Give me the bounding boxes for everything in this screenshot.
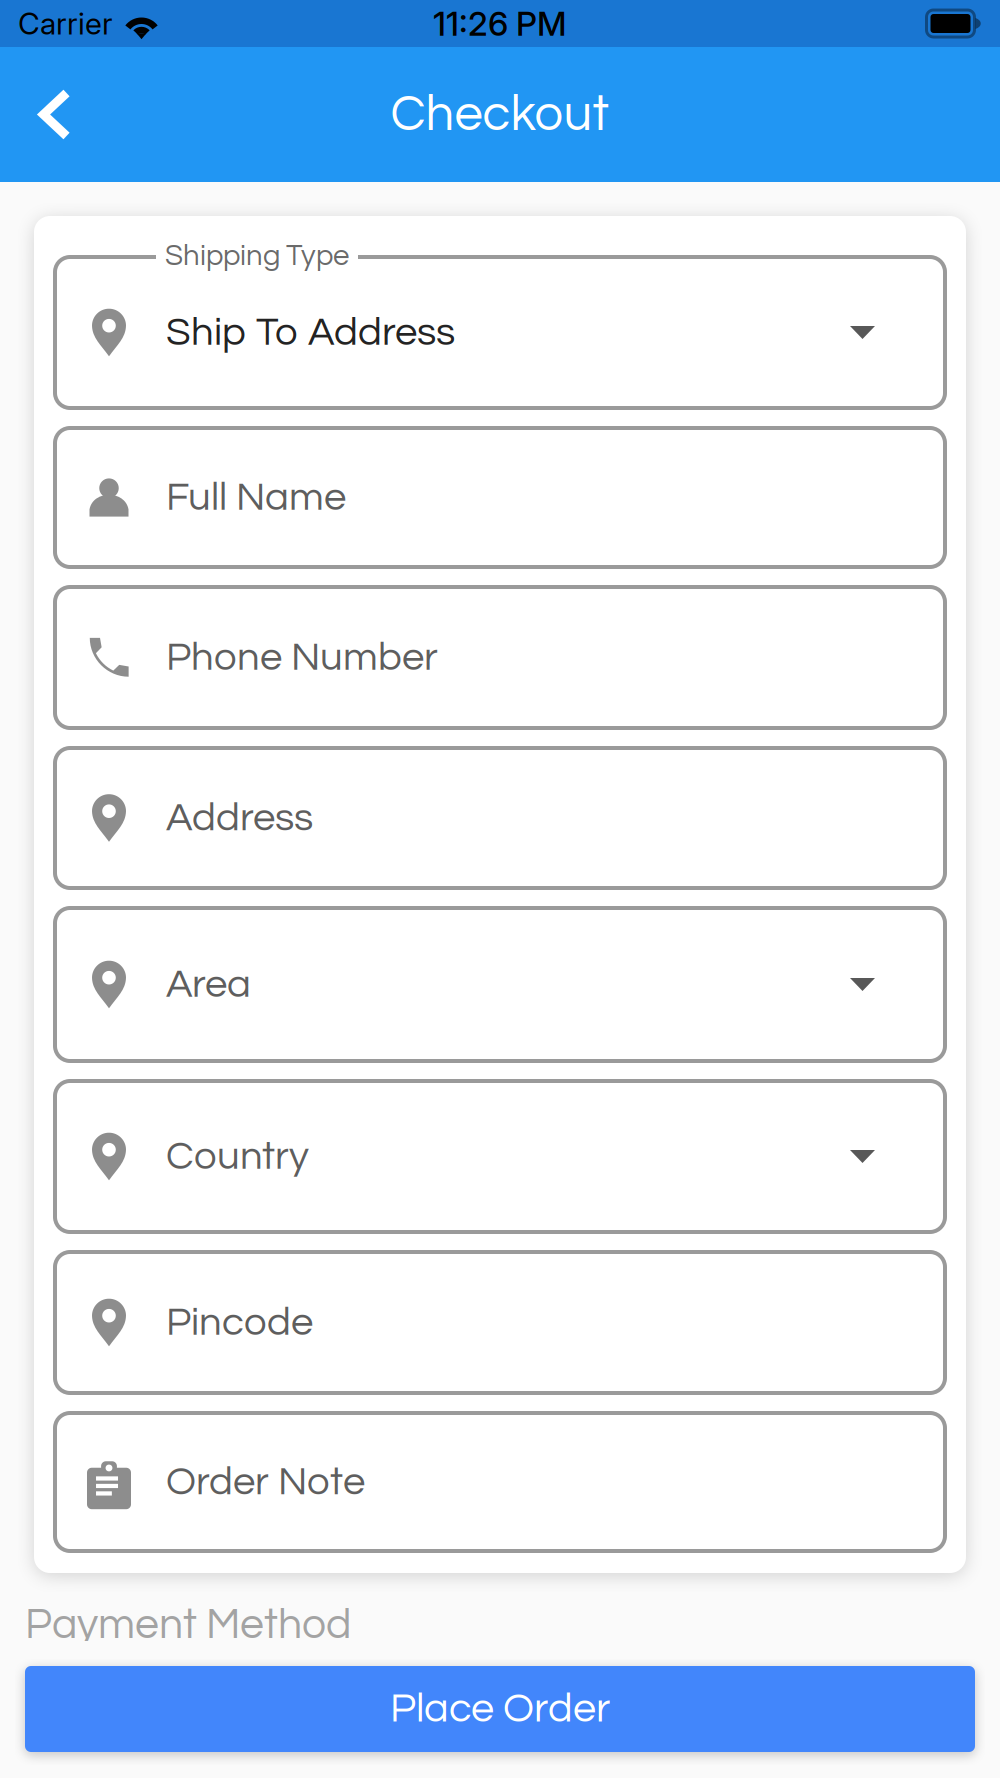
button[interactable]: Country	[55, 1081, 945, 1232]
staticText: Order Note	[166, 1461, 365, 1503]
staticText: Phone Number	[166, 637, 438, 678]
staticText: 11:26 PM	[433, 3, 567, 44]
staticText: Pincode	[166, 1302, 313, 1343]
staticText: Ship To Address	[166, 312, 455, 353]
staticText: Place Order	[390, 1688, 610, 1730]
button[interactable]: Pincode	[55, 1252, 945, 1393]
staticText: Carrier	[18, 5, 113, 42]
button[interactable]: Phone Number	[55, 587, 945, 728]
staticText: Payment Method	[25, 1603, 351, 1647]
staticText: Checkout	[390, 88, 609, 141]
staticText: Shipping Type	[165, 241, 349, 271]
button[interactable]: Ship To Address	[55, 257, 945, 408]
staticText: Area	[166, 964, 251, 1005]
button[interactable]: Order Note	[55, 1413, 945, 1551]
button[interactable]: Area	[55, 908, 945, 1061]
staticText: Country	[166, 1136, 309, 1177]
button[interactable]: Address	[55, 748, 945, 888]
button[interactable]: Back	[0, 66, 110, 162]
button[interactable]: Place Order	[25, 1666, 975, 1752]
staticText: Full Name	[166, 477, 346, 518]
button[interactable]: Full Name	[55, 428, 945, 567]
staticText: Address	[166, 797, 313, 839]
